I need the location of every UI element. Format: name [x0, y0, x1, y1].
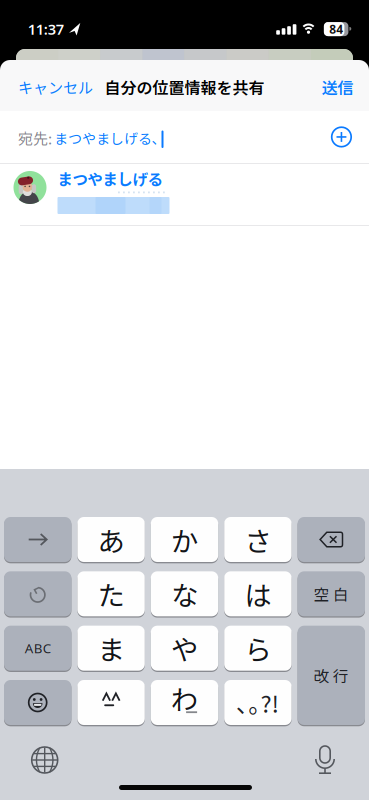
staticText: ､｡?!: [236, 685, 279, 719]
staticText: は: [244, 574, 271, 614]
staticText: 空 白: [314, 583, 349, 605]
staticText: ら: [244, 628, 271, 668]
staticText: まつやましげる: [57, 167, 162, 190]
staticText: 84: [329, 21, 343, 37]
button[interactable]: Reverse: [4, 571, 71, 618]
button[interactable]: わ: [151, 680, 218, 726]
button[interactable]: ^_^: [77, 680, 145, 726]
staticText: 改 行: [314, 664, 349, 686]
button[interactable]: 、。?!: [224, 680, 292, 726]
button[interactable]: ま: [77, 626, 145, 672]
staticText: や: [171, 628, 198, 668]
staticText: 送信: [321, 75, 353, 99]
staticText: か: [171, 520, 198, 559]
button[interactable]: Next keyboard: [23, 738, 67, 782]
button[interactable]: な: [151, 571, 218, 618]
button[interactable]: は: [224, 571, 292, 618]
staticText: 自分の位置情報を共有: [104, 75, 264, 99]
staticText: キャンセル: [18, 76, 93, 98]
button[interactable]: Delete: [298, 517, 365, 563]
button[interactable]: や: [151, 626, 218, 672]
staticText: 11:37: [28, 19, 64, 39]
button[interactable]: Dismiss: [4, 517, 71, 563]
staticText: 宛先:: [18, 127, 52, 149]
button[interactable]: Return: [298, 626, 365, 726]
button[interactable]: さ: [224, 517, 292, 563]
staticText: ABC: [25, 639, 51, 657]
button[interactable]: Emoji: [4, 680, 71, 726]
button[interactable]: 送信: [321, 76, 353, 98]
staticText: ま: [98, 628, 125, 668]
button[interactable]: キャンセル: [18, 76, 93, 98]
button[interactable]: か: [151, 517, 218, 563]
staticText: た: [98, 574, 125, 614]
staticText: まつやましげる: [54, 128, 152, 148]
button[interactable]: Switch to ABC: [4, 626, 71, 672]
button[interactable]: ら: [224, 626, 292, 672]
staticText: な: [171, 574, 198, 614]
button[interactable]: Dictation: [303, 738, 347, 782]
staticText: わ: [171, 678, 198, 718]
button[interactable]: Space: [298, 571, 365, 618]
button[interactable]: まつやましげる: [0, 163, 369, 225]
button[interactable]: た: [77, 571, 145, 618]
staticText: 、: [151, 128, 165, 148]
staticText: あ: [98, 520, 125, 559]
button[interactable]: Add Contact: [332, 127, 351, 147]
button[interactable]: あ: [77, 517, 145, 563]
staticText: さ: [244, 520, 271, 559]
